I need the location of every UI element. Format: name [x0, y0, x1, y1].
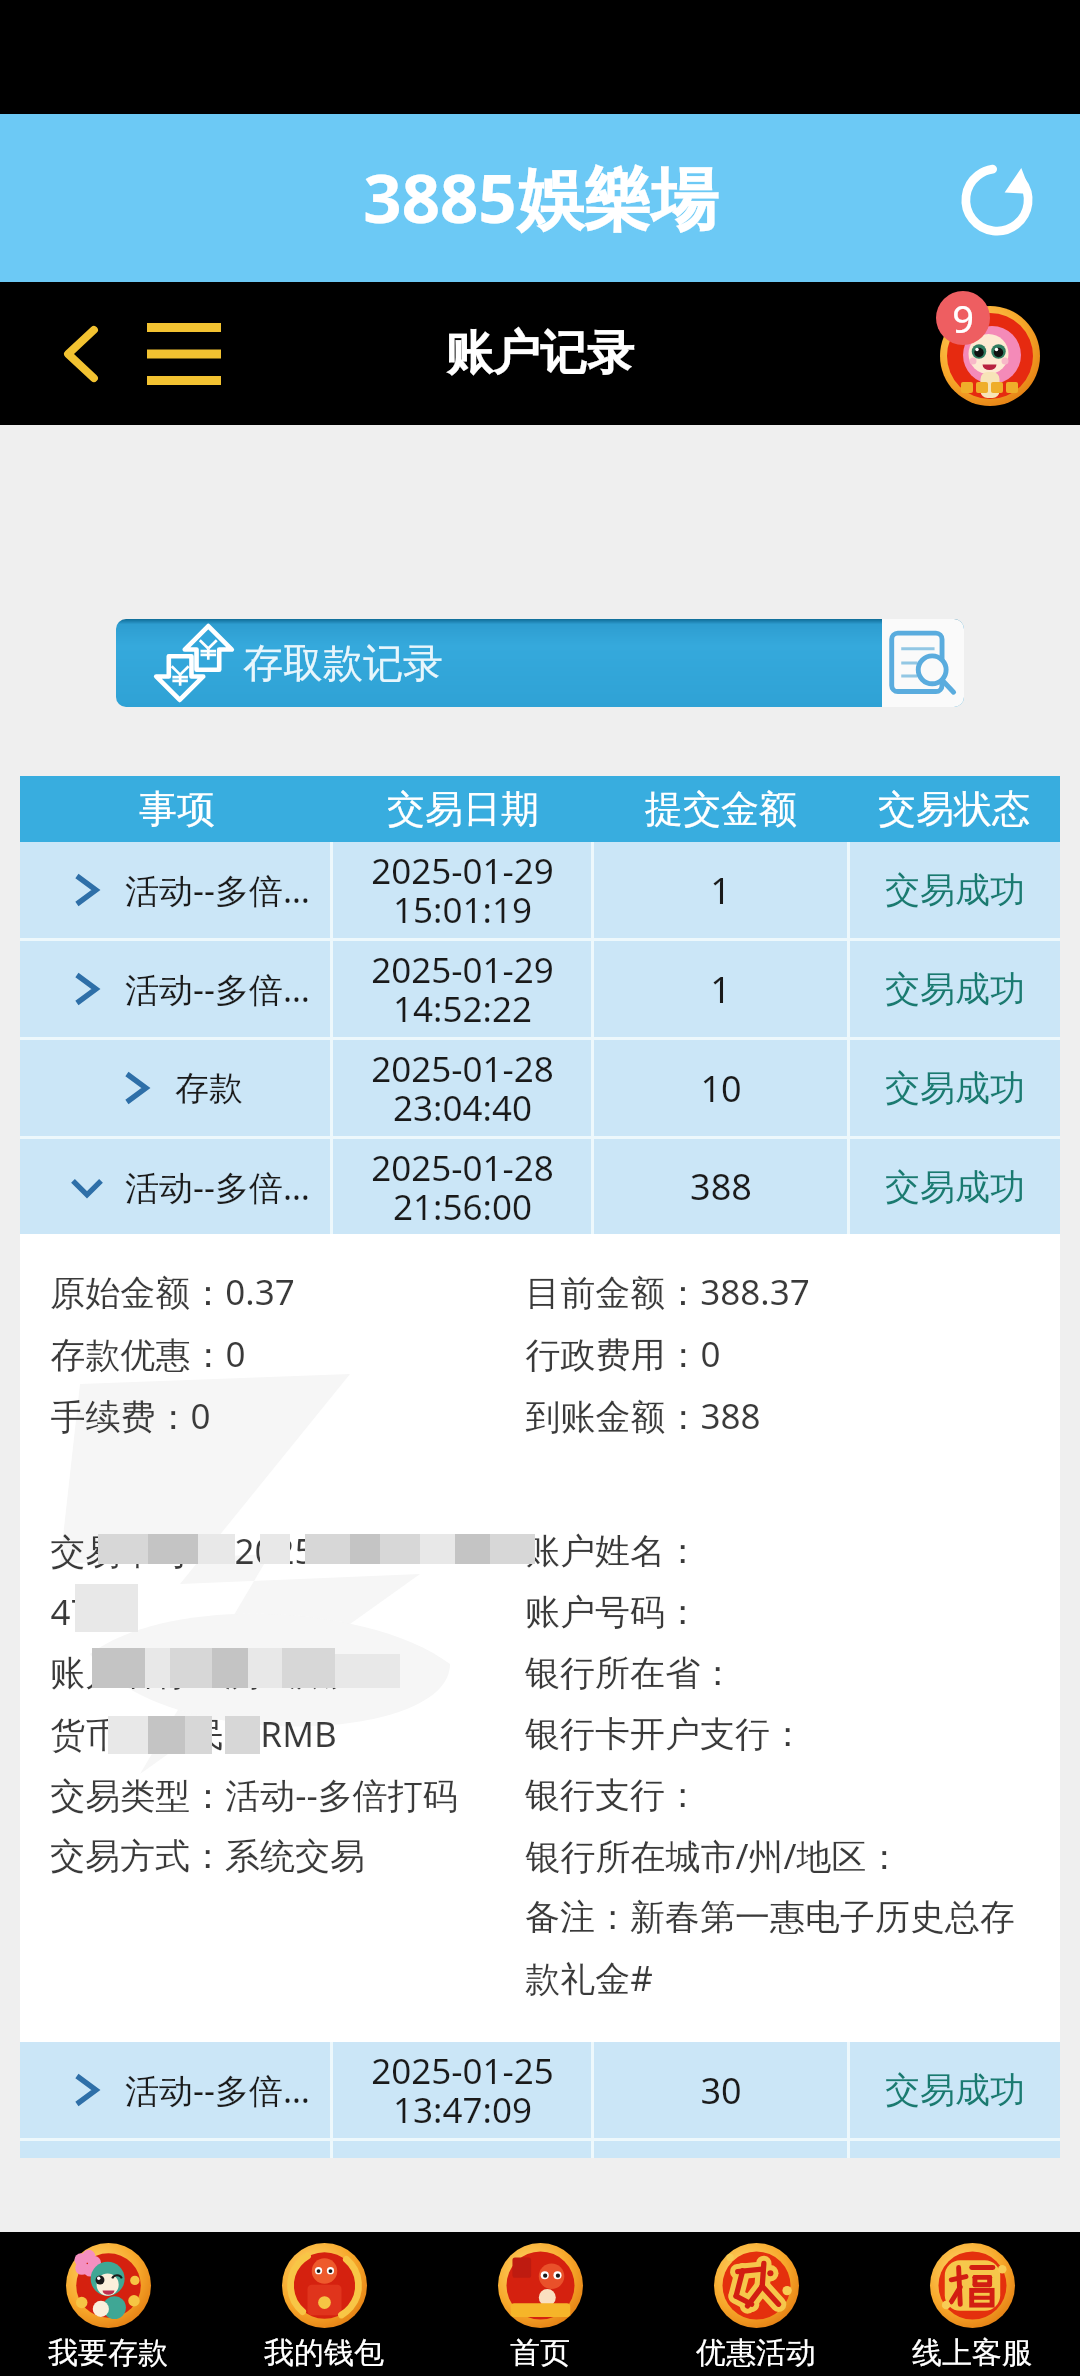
- staticText: 交易类型：活动--多倍打码: [50, 1771, 458, 1819]
- staticText: 2025-01-29 15:01:19: [371, 847, 554, 933]
- button[interactable]: 我的钱包: [216, 2232, 432, 2376]
- button[interactable]: 我要存款: [0, 2232, 216, 2376]
- staticText: 存款优惠：0: [50, 1330, 246, 1378]
- staticText: 原始金额：0.37: [50, 1268, 295, 1316]
- staticText: 首页: [510, 2334, 570, 2372]
- staticText: 账户名称：测试账户: [50, 1651, 365, 1695]
- button[interactable]: Refresh: [947, 150, 1047, 250]
- staticText: 优惠活动: [696, 2334, 816, 2372]
- button[interactable]: 活动--多倍…: [20, 941, 1060, 1037]
- staticText: 事项: [139, 785, 215, 833]
- staticText: 1: [710, 965, 731, 1014]
- button[interactable]: 存款: [20, 1040, 1060, 1136]
- staticText: 9: [952, 292, 974, 344]
- staticText: 交易日期: [387, 785, 539, 833]
- staticText: 活动--多倍…: [125, 966, 310, 1012]
- staticText: 提交金额: [645, 785, 797, 833]
- staticText: 银行所在省：: [525, 1651, 735, 1695]
- button[interactable]: Back: [37, 310, 125, 398]
- staticText: 2025-01-28 21:56:00: [371, 1144, 554, 1230]
- button[interactable]: 存取款记录: [116, 619, 964, 707]
- button[interactable]: Profile: [940, 306, 1040, 406]
- staticText: 活动--多倍…: [125, 2067, 310, 2113]
- button[interactable]: 线上客服: [864, 2232, 1080, 2376]
- staticText: 交易状态: [878, 785, 1030, 833]
- staticText: 行政费用：0: [525, 1330, 721, 1378]
- staticText: 备注：新春第一惠电子历史总存: [525, 1895, 1015, 1939]
- staticText: 1: [710, 866, 731, 915]
- button[interactable]: Menu: [140, 310, 228, 398]
- staticText: 我的钱包: [264, 2334, 384, 2372]
- staticText: 3885娛樂場: [363, 151, 718, 243]
- staticText: 存款: [175, 1067, 243, 1110]
- staticText: 10: [700, 1064, 742, 1113]
- button[interactable]: 优惠活动: [648, 2232, 864, 2376]
- staticText: 我要存款: [48, 2334, 168, 2372]
- button[interactable]: 首页: [432, 2232, 648, 2376]
- staticText: 388: [690, 1162, 752, 1211]
- staticText: 活动--多倍…: [125, 867, 310, 913]
- staticText: 账户姓名：: [525, 1529, 700, 1573]
- staticText: 账户记录: [446, 324, 634, 383]
- staticText: 交易方式：系统交易: [50, 1834, 365, 1878]
- staticText: 交易成功: [885, 868, 1025, 912]
- staticText: 活动--多倍…: [125, 1164, 310, 1210]
- staticText: 手续费：0: [50, 1392, 211, 1440]
- staticText: 交易成功: [885, 1165, 1025, 1209]
- staticText: 4771: [50, 1588, 131, 1636]
- staticText: 货币：人民币RMB: [50, 1710, 337, 1758]
- button[interactable]: 活动--多倍…: [20, 842, 1060, 938]
- staticText: 2025-01-29 14:52:22: [371, 946, 554, 1032]
- staticText: 账户号码：: [525, 1590, 700, 1634]
- staticText: 目前金额：388.37: [525, 1268, 810, 1316]
- staticText: 款礼金#: [525, 1954, 653, 2002]
- staticText: 线上客服: [912, 2334, 1032, 2372]
- staticText: 30: [700, 2066, 742, 2115]
- staticText: 2025-01-28 23:04:40: [371, 1045, 554, 1131]
- staticText: 银行所在城市/州/地区：: [525, 1832, 902, 1880]
- staticText: 交易成功: [885, 1066, 1025, 1110]
- staticText: 银行卡开户支行：: [525, 1712, 805, 1756]
- button[interactable]: 活动--多倍…: [20, 2042, 1060, 2138]
- button[interactable]: 活动--多倍…: [20, 1139, 1060, 1234]
- staticText: 存取款记录: [243, 638, 443, 688]
- staticText: 交易单号： 2025012821560: [50, 1527, 495, 1575]
- staticText: 银行支行：: [525, 1773, 700, 1817]
- staticText: 到账金额：388: [525, 1392, 761, 1440]
- staticText: 2025-01-25 13:47:09: [371, 2047, 554, 2133]
- staticText: 交易成功: [885, 2068, 1025, 2112]
- staticText: 交易成功: [885, 967, 1025, 1011]
